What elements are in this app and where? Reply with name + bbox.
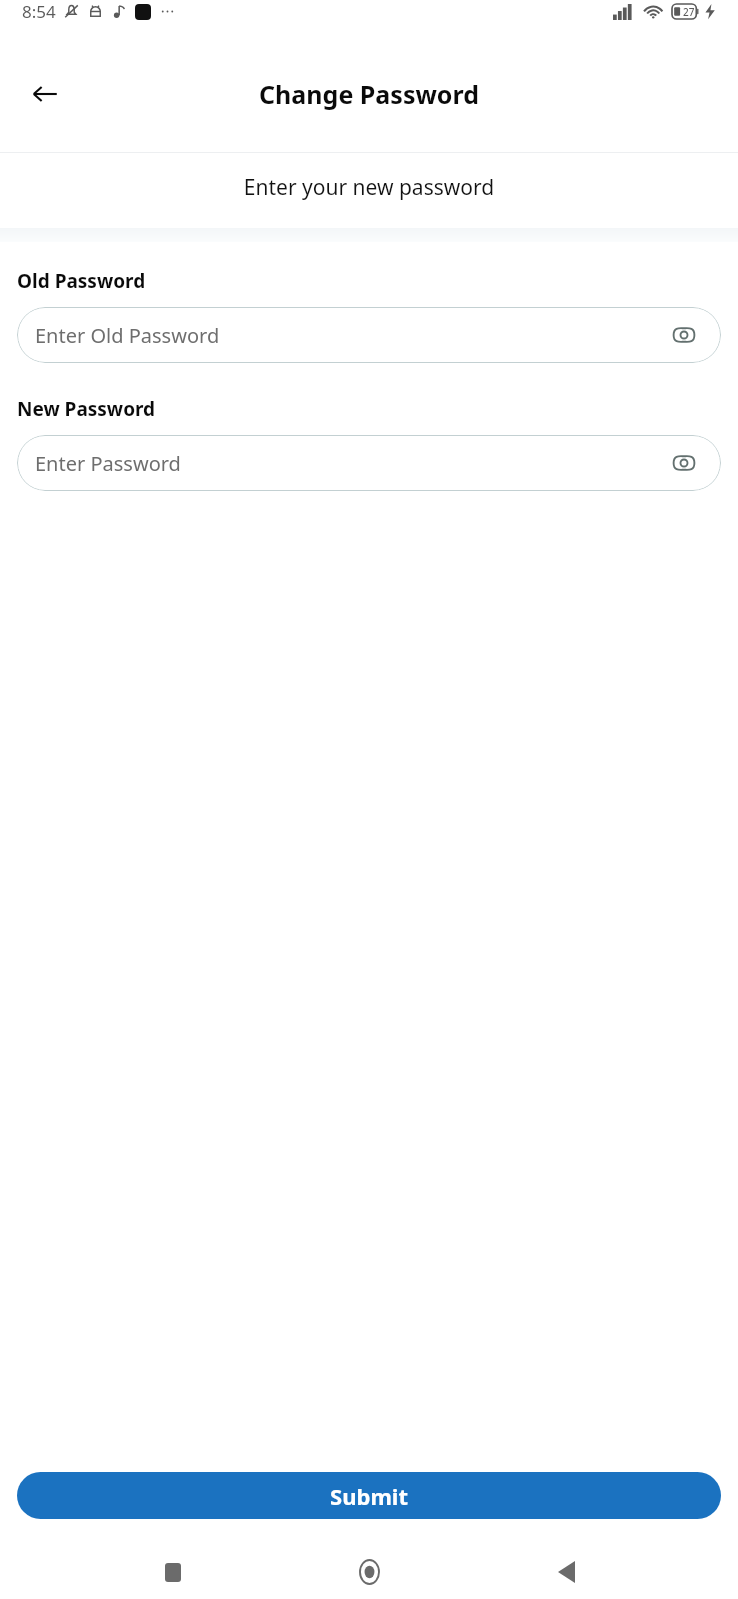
staticText: 8:54 [22, 0, 56, 23]
staticText: Submit [330, 1481, 408, 1511]
staticText: Enter your new password [0, 173, 738, 202]
button[interactable]: Enter Old Password [17, 307, 721, 363]
button[interactable]: Show password [669, 320, 699, 350]
button[interactable]: Enter Password [17, 435, 721, 491]
staticText: Enter Password [35, 450, 669, 477]
button[interactable]: Back [542, 1548, 590, 1596]
button[interactable]: Recent apps [149, 1548, 197, 1596]
staticText: Enter Old Password [35, 322, 669, 349]
button[interactable]: Show password [669, 448, 699, 478]
staticText: 27 [683, 5, 695, 19]
staticText: New Password [17, 396, 156, 422]
button[interactable]: Submit [17, 1472, 721, 1519]
button[interactable]: Back [20, 69, 70, 119]
staticText: Change Password [259, 77, 479, 111]
staticText: Old Password [17, 268, 146, 294]
button[interactable]: Home [345, 1548, 393, 1596]
